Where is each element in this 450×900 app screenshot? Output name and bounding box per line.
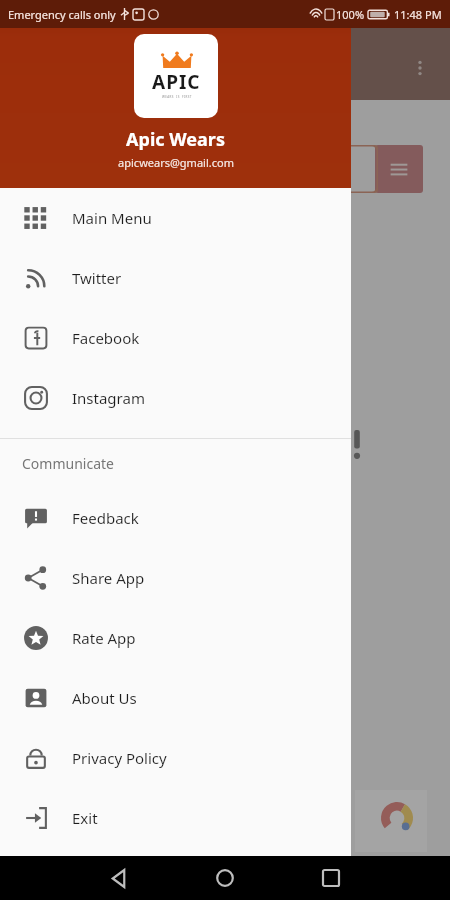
button[interactable]: Home (197, 856, 253, 900)
button[interactable]: Back (91, 856, 147, 900)
staticText: Communicate (22, 454, 114, 473)
button[interactable]: Twitter (0, 248, 351, 308)
button[interactable]: Privacy Policy (0, 728, 351, 788)
button[interactable]: Share App (0, 548, 351, 608)
staticText: Exit (72, 808, 98, 828)
staticText: 11:48 PM (394, 7, 442, 22)
staticText: Privacy Policy (72, 748, 167, 768)
staticText: WEARS IS FIRST (162, 95, 192, 99)
button[interactable]: More options (400, 48, 440, 88)
staticText: Share App (72, 568, 145, 588)
staticText: APIC (152, 69, 201, 95)
staticText: Apic Wears (126, 127, 225, 152)
staticText: Twitter (72, 268, 122, 288)
staticText: 100% (336, 7, 365, 22)
staticText: Instagram (72, 388, 145, 408)
button[interactable]: Facebook (0, 308, 351, 368)
staticText: Emergency calls only (8, 7, 116, 22)
staticText: apicwears@gmail.com (118, 155, 234, 170)
staticText: Main Menu (72, 208, 152, 228)
button[interactable]: Main Menu (0, 188, 351, 248)
button[interactable]: List (375, 145, 423, 193)
staticText: About Us (72, 688, 137, 708)
button[interactable]: Rate App (0, 608, 351, 668)
staticText: Feedback (72, 508, 139, 528)
staticText: Facebook (72, 328, 140, 348)
button[interactable]: Instagram (0, 368, 351, 428)
button[interactable]: Feedback (0, 488, 351, 548)
button[interactable]: Exit (0, 788, 351, 848)
staticText: Rate App (72, 628, 136, 648)
button[interactable]: About Us (0, 668, 351, 728)
button[interactable]: Recent apps (303, 856, 359, 900)
